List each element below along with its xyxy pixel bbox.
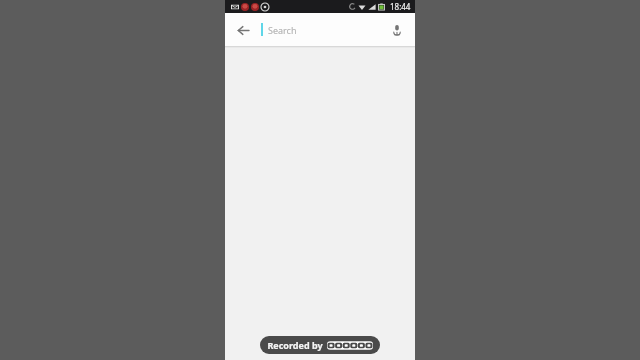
button[interactable]: Search [261,13,384,46]
button[interactable]: Navigate up [231,18,255,42]
button[interactable]: Voice search [384,17,410,43]
staticText: Search [268,24,297,36]
staticText: Recorded by [267,339,323,351]
staticText: 18:44 [390,1,411,12]
